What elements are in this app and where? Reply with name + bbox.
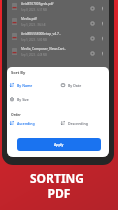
button[interactable]: #vid8107005grds.pdf bbox=[7, 0, 109, 14]
staticText: Apply bbox=[54, 142, 64, 147]
staticText: Sep 5, 2023 - 394 kB bbox=[21, 23, 46, 27]
button[interactable]: By Name bbox=[10, 81, 33, 89]
staticText: Media.pdf bbox=[21, 17, 37, 21]
button[interactable]: Descending bbox=[61, 119, 88, 127]
staticText: Sep 5, 2023 - 4.48 MB bbox=[21, 53, 47, 57]
staticText: SORTING bbox=[0, 170, 116, 186]
button[interactable]: Select file bbox=[88, 4, 97, 13]
button[interactable]: Select file bbox=[88, 19, 97, 28]
staticText: Sep 5, 2023 - 5.80 MB bbox=[21, 38, 47, 42]
staticText: By Name bbox=[17, 83, 33, 88]
button[interactable]: #vid855558000etap_v4.7.. bbox=[7, 29, 109, 44]
staticText: Media_Composer_NewsCart.. bbox=[21, 47, 67, 51]
button[interactable]: More options bbox=[99, 20, 106, 27]
staticText: PDF bbox=[0, 185, 118, 201]
staticText: By Size bbox=[17, 97, 29, 102]
button[interactable]: Media_Composer_NewsCart.. bbox=[7, 44, 109, 59]
button[interactable]: More options bbox=[99, 35, 106, 42]
staticText: Sort By bbox=[11, 70, 26, 75]
button[interactable]: Select file bbox=[88, 49, 97, 58]
button[interactable]: More options bbox=[99, 5, 106, 12]
button[interactable]: Media.pdf bbox=[7, 14, 109, 29]
button[interactable]: By Size bbox=[10, 95, 29, 103]
button[interactable]: Ascending bbox=[10, 119, 35, 127]
button[interactable]: More options bbox=[99, 50, 106, 57]
button[interactable]: By Date bbox=[61, 81, 82, 89]
staticText: #vid855558000etap_v4.7.. bbox=[21, 32, 61, 36]
staticText: #vid8107005grds.pdf bbox=[21, 2, 54, 6]
staticText: Descending bbox=[68, 121, 88, 126]
staticText: Ascending bbox=[17, 121, 35, 126]
staticText: Sep 8, 2023 - 6.37 MB bbox=[21, 8, 47, 12]
staticText: Order bbox=[11, 112, 21, 117]
button[interactable]: Apply bbox=[17, 138, 101, 151]
staticText: By Date bbox=[68, 83, 82, 88]
button[interactable]: Select file bbox=[88, 34, 97, 43]
